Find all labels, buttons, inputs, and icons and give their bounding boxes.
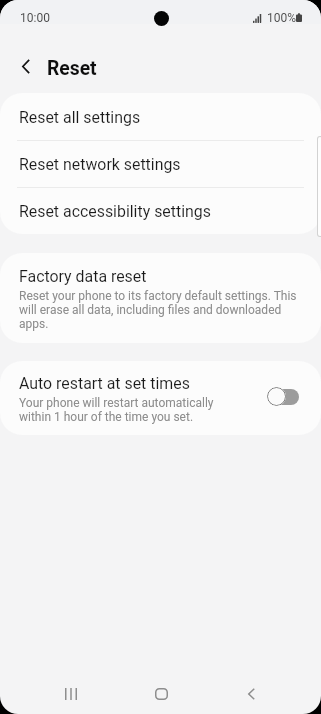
button[interactable]: Reset all settings [0,93,321,140]
button[interactable]: Factory data reset [0,253,321,343]
staticText: Reset accessibility settings [19,202,211,221]
button[interactable]: Recent apps [47,672,95,714]
staticText: Reset [47,57,97,80]
button[interactable]: Home [137,672,185,714]
staticText: 100% [267,11,297,25]
button[interactable]: Reset accessibility settings [0,187,321,234]
staticText: Reset network settings [19,155,181,174]
staticText: 10:00 [20,11,50,25]
staticText: Reset your phone to its factory default … [19,289,300,331]
button[interactable]: Auto restart at set times [0,361,321,435]
staticText: Auto restart at set times [19,374,190,393]
staticText: Factory data reset [19,267,147,286]
button[interactable]: Auto restart at set times toggle [267,387,299,406]
staticText: Your phone will restart automatically wi… [19,396,224,424]
staticText: Reset all settings [19,108,141,127]
button[interactable]: Navigate up [8,48,44,84]
button[interactable]: Back [227,672,275,714]
button[interactable]: Reset network settings [0,140,321,187]
